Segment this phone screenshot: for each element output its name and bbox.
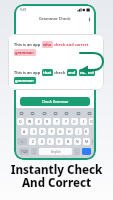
button[interactable]: V [56,138,63,145]
button[interactable]: Toolbar 5 [76,111,80,115]
staticText: grammar: [15,50,35,55]
button[interactable]: ?123 [19,148,29,155]
button[interactable]: D [39,128,46,135]
button[interactable]: B [65,138,72,145]
staticText: G [59,129,62,134]
button[interactable]: X [38,138,45,145]
staticText: This is an app [14,42,42,47]
staticText: check [53,70,67,75]
button[interactable]: G [57,128,64,135]
staticText: that [43,70,52,75]
button[interactable]: Enter [82,148,91,155]
staticText: W [28,119,32,124]
staticText: English [51,150,61,154]
staticText: U [73,119,76,124]
button[interactable]: Toolbar 6 [87,111,91,115]
button[interactable]: F [48,128,55,135]
button[interactable]: Toolbar 0 [19,111,23,115]
staticText: Y [65,119,67,124]
staticText: N [76,139,79,144]
staticText: correct [80,70,94,75]
button[interactable]: A [21,128,28,135]
staticText: ?123 [21,150,28,154]
staticText: F [51,129,53,134]
staticText: who [43,42,52,47]
staticText: B [67,139,70,144]
button[interactable]: W [26,118,33,125]
button[interactable]: C [47,138,54,145]
button[interactable]: M [83,138,90,145]
staticText: and [68,70,76,75]
staticText: Q [19,119,22,124]
staticText: Instantly Check And Correct [0,162,113,190]
staticText: This is an app [14,70,42,75]
staticText: D [41,129,44,134]
staticText: K [85,129,88,134]
button[interactable]: Z [29,138,36,145]
staticText: M [85,139,89,144]
button[interactable]: T [53,118,60,125]
staticText: ⇧ [21,140,24,143]
button[interactable]: Toolbar 4 [64,111,68,115]
button[interactable]: I [80,118,87,125]
staticText: H [68,129,71,134]
staticText: V [58,139,61,144]
button[interactable]: English [39,148,72,155]
button[interactable]: Q [17,118,24,125]
staticText: S [33,129,35,134]
button[interactable]: ⌫ [92,138,93,145]
staticText: O [90,119,93,124]
button[interactable]: H [66,128,73,135]
button[interactable]: Toolbar 3 [53,111,57,115]
staticText: Check Grammar [42,99,69,104]
button[interactable]: K [84,128,89,135]
staticText: E [38,119,40,124]
staticText: . [77,150,78,154]
staticText: Z [32,139,34,144]
button[interactable]: S [30,128,37,135]
button[interactable]: ⇧ [17,138,27,145]
staticText: X [41,139,43,144]
button[interactable]: E [35,118,42,125]
staticText: check and correct [53,42,89,47]
staticText: , [34,150,35,154]
staticText: 9:41 [20,8,27,12]
staticText: ⌫ [92,140,93,143]
staticText: T [56,119,58,124]
button[interactable]: Check Grammar [20,97,90,106]
button[interactable]: . [74,148,80,155]
button[interactable]: , [31,148,37,155]
staticText: J [78,129,79,134]
button[interactable]: More options [86,16,92,22]
staticText: C [49,139,52,144]
button[interactable]: N [74,138,81,145]
button[interactable]: J [75,128,82,135]
button[interactable]: Toolbar 2 [42,111,46,115]
button[interactable]: U [71,118,78,125]
staticText: I [83,119,85,124]
button[interactable]: O [89,118,93,125]
button[interactable]: Toolbar 1 [30,111,34,115]
staticText: grammar: [15,78,35,83]
staticText: R [46,119,49,124]
staticText: A [23,129,26,134]
staticText: Grammar Check [39,16,71,21]
button[interactable]: R [44,118,51,125]
button[interactable]: Y [62,118,69,125]
